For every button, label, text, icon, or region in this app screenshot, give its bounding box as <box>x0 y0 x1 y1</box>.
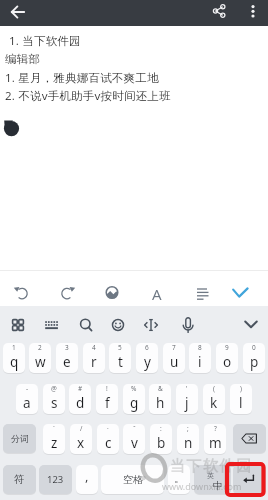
staticText: e <box>63 353 71 371</box>
staticText: s <box>51 394 58 412</box>
button[interactable] <box>8 279 36 307</box>
button[interactable]: 1 <box>3 343 25 373</box>
button[interactable] <box>226 280 254 308</box>
staticText: 1. 星月，雅典娜百试不爽工地 <box>5 70 159 86</box>
staticText: 2 <box>38 343 42 352</box>
button[interactable]: 2 <box>29 343 51 373</box>
staticText: m <box>209 434 222 452</box>
staticText: % <box>131 384 137 393</box>
staticText: , <box>85 467 89 485</box>
staticText: j <box>185 394 189 412</box>
button[interactable]: 0 <box>243 343 265 373</box>
button[interactable]: 3 <box>56 343 78 373</box>
staticText: 编辑部 <box>5 52 41 66</box>
button[interactable]: 。 <box>168 465 190 494</box>
button[interactable] <box>104 311 132 339</box>
staticText: ) <box>240 384 242 393</box>
staticText: 5 <box>118 343 122 352</box>
staticText: 符 <box>14 473 25 486</box>
button[interactable]: 5 <box>109 343 131 373</box>
staticText: v <box>131 434 138 452</box>
button[interactable]: 123 <box>39 465 72 494</box>
button[interactable] <box>233 424 266 453</box>
button[interactable] <box>174 311 202 339</box>
button[interactable]: ; <box>177 424 199 454</box>
button[interactable]: ˇ <box>123 424 145 454</box>
staticText: - <box>26 384 29 393</box>
staticText: i <box>198 353 202 371</box>
button[interactable] <box>37 311 65 339</box>
button[interactable] <box>98 279 126 307</box>
button[interactable]: , <box>76 465 98 494</box>
button[interactable]: 英 <box>194 465 231 494</box>
button[interactable]: 分词 <box>3 424 36 453</box>
staticText: u <box>170 353 179 371</box>
button[interactable] <box>53 279 81 307</box>
staticText: z <box>51 434 58 452</box>
staticText: a <box>23 394 31 412</box>
staticText: ` <box>53 424 55 433</box>
staticText: # <box>78 384 83 393</box>
button[interactable]: ? <box>204 424 226 454</box>
button[interactable]: 7 <box>163 343 185 373</box>
staticText: : <box>160 424 162 433</box>
staticText: r <box>91 353 97 371</box>
staticText: 8 <box>198 343 202 352</box>
button[interactable]: · <box>97 424 119 454</box>
button[interactable]: @ <box>43 384 65 414</box>
staticText: 123 <box>47 473 64 486</box>
staticText: 9 <box>225 343 229 352</box>
staticText: 6 <box>145 343 149 352</box>
staticText: d <box>76 394 85 412</box>
button[interactable]: ( <box>203 384 225 414</box>
staticText: · <box>107 424 109 433</box>
staticText: f <box>105 394 110 412</box>
button[interactable] <box>242 0 264 24</box>
button[interactable]: 8 <box>189 343 211 373</box>
button[interactable]: # <box>69 384 91 414</box>
button[interactable]: ` <box>43 424 65 454</box>
button[interactable]: % <box>123 384 145 414</box>
staticText: ˇ <box>133 424 136 433</box>
button[interactable] <box>189 280 217 308</box>
button[interactable]: ) <box>230 384 252 414</box>
button[interactable] <box>137 311 165 339</box>
button[interactable]: 4 <box>83 343 105 373</box>
button[interactable]: 6 <box>136 343 158 373</box>
button[interactable]: 9 <box>216 343 238 373</box>
button[interactable]: 空格 <box>101 465 164 494</box>
staticText: w <box>35 353 46 371</box>
button[interactable] <box>237 311 265 339</box>
button[interactable] <box>72 311 100 339</box>
staticText: b <box>157 434 166 452</box>
button[interactable]: & <box>149 384 171 414</box>
staticText: y <box>144 353 151 371</box>
staticText: / <box>80 424 83 433</box>
button[interactable] <box>208 0 232 24</box>
button[interactable] <box>5 0 31 26</box>
button[interactable]: - <box>16 384 38 414</box>
staticText: 2. 不说v手机助手v按时间还上班 <box>5 88 171 104</box>
staticText: o <box>223 353 232 371</box>
button[interactable]: 符 <box>3 465 36 494</box>
button[interactable]: / <box>70 424 92 454</box>
staticText: @ <box>51 384 57 393</box>
staticText: h <box>156 394 165 412</box>
staticText: q <box>10 353 19 371</box>
staticText: g <box>130 394 139 412</box>
button[interactable]: ! <box>96 384 118 414</box>
staticText: x <box>77 434 85 452</box>
staticText: c <box>105 434 112 452</box>
staticText: & <box>158 384 163 393</box>
staticText: ? <box>214 424 217 433</box>
button[interactable]: A <box>143 280 171 308</box>
staticText: ( <box>213 384 215 393</box>
staticText: 1. 当下软件园 <box>9 33 81 49</box>
button[interactable]: : <box>150 424 172 454</box>
button[interactable] <box>233 465 266 494</box>
staticText: p <box>250 353 259 371</box>
button[interactable]: ' <box>176 384 198 414</box>
button[interactable] <box>4 311 32 339</box>
staticText: ' <box>186 384 188 393</box>
staticText: ; <box>187 424 189 433</box>
